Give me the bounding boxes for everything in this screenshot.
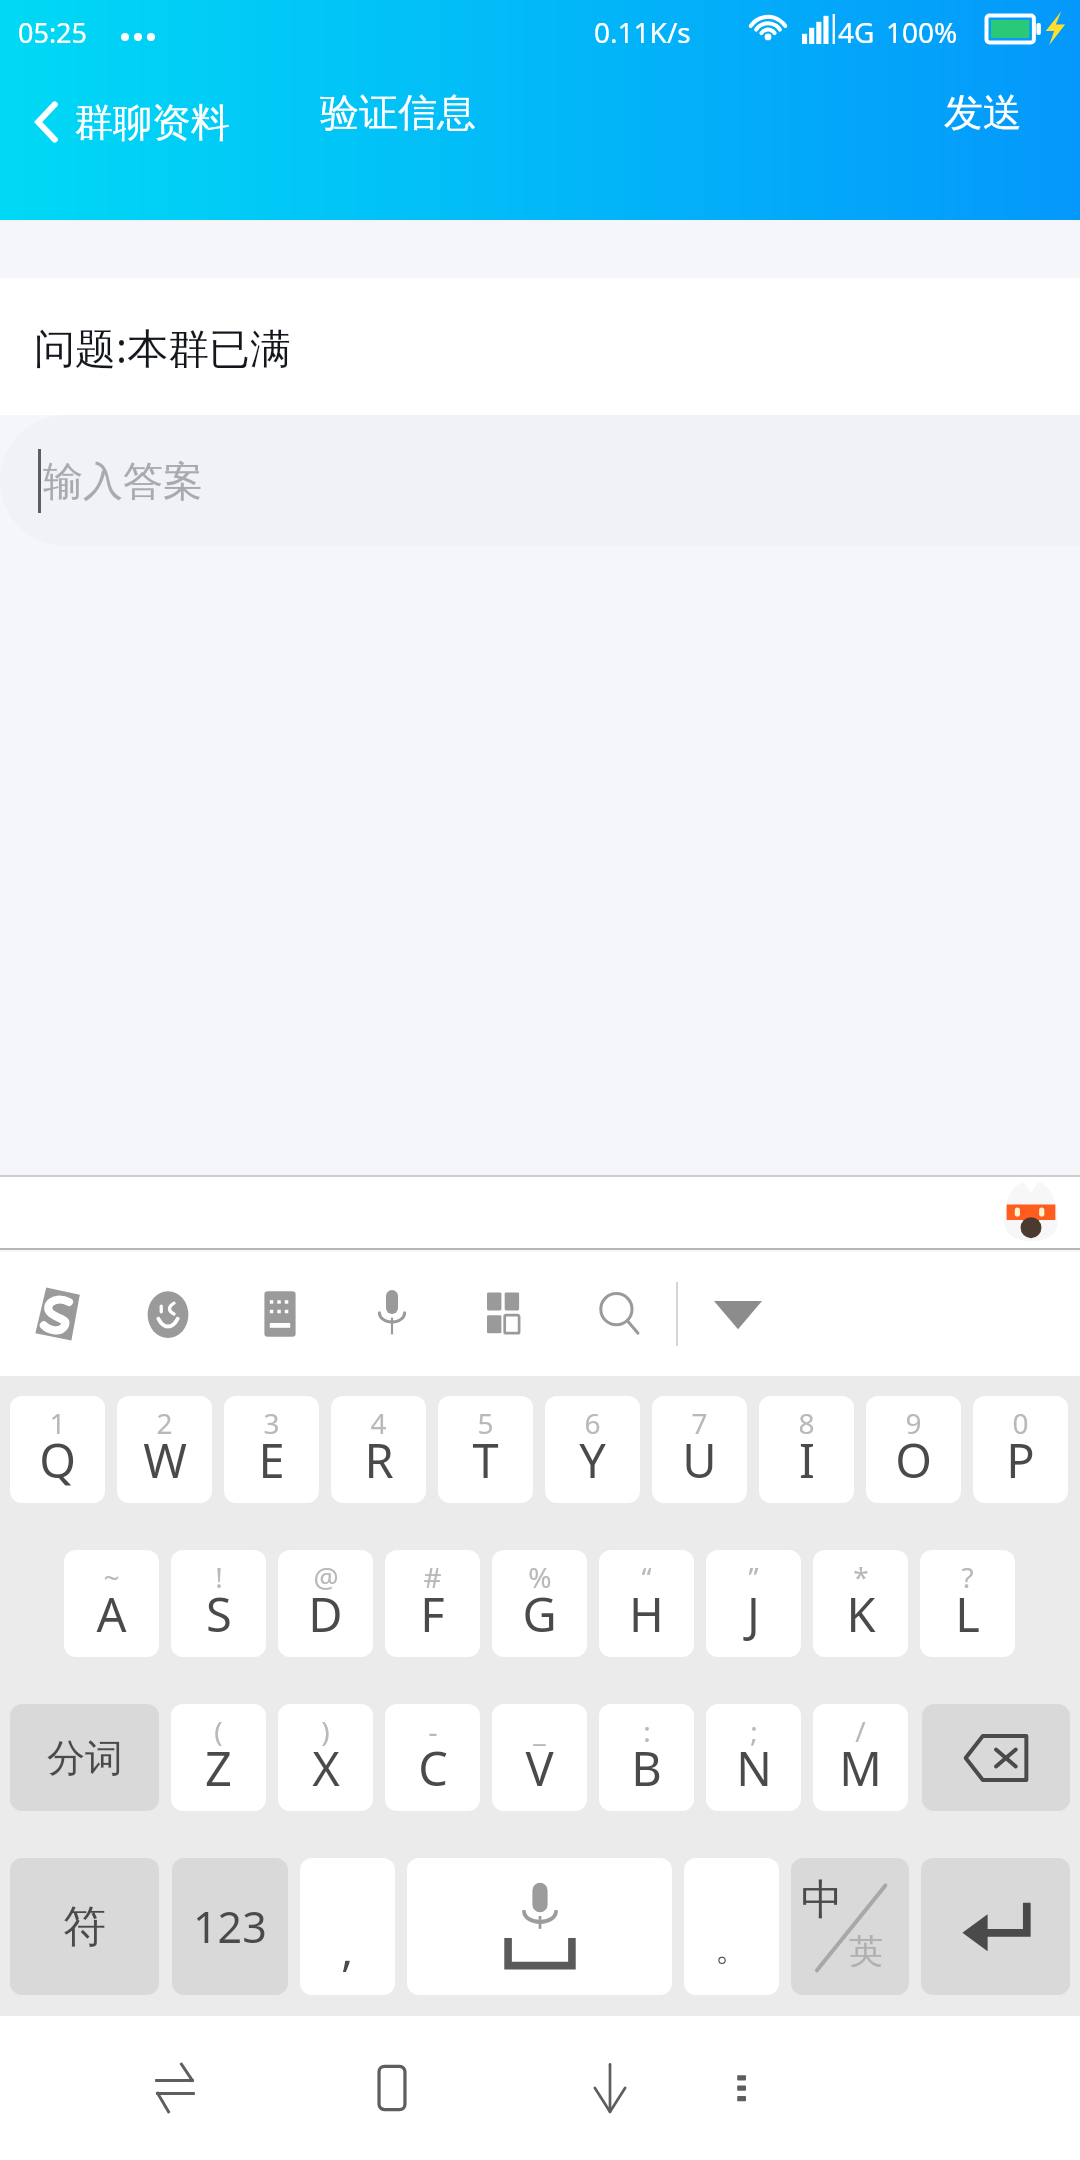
button[interactable]: Backspace <box>922 1704 1070 1811</box>
button[interactable]: Hide keyboard <box>688 1252 788 1376</box>
staticText: # <box>423 1558 442 1596</box>
staticText: C <box>418 1736 448 1800</box>
button[interactable]: 123 <box>172 1858 288 1995</box>
staticText: 分词 <box>47 1734 123 1782</box>
staticText: - <box>428 1712 438 1750</box>
button[interactable]: Keyboard <box>232 1252 328 1376</box>
staticText: 05:25 <box>18 14 88 51</box>
staticText: ; <box>750 1712 758 1750</box>
button[interactable]: Search <box>572 1252 668 1376</box>
staticText: ! <box>215 1558 223 1596</box>
button[interactable]: Emoji <box>120 1252 216 1376</box>
staticText: ~ <box>103 1558 120 1596</box>
button[interactable]: @ <box>278 1550 373 1657</box>
button[interactable]: 3 <box>224 1396 319 1503</box>
button[interactable]: Panels <box>457 1252 553 1376</box>
button[interactable]: Sogou <box>9 1252 105 1376</box>
button[interactable]: 2 <box>117 1396 212 1503</box>
button[interactable]: ) <box>278 1704 373 1811</box>
staticText: N <box>736 1736 772 1800</box>
staticText: A <box>96 1582 127 1646</box>
staticText: Y <box>579 1428 606 1492</box>
button[interactable]: Sogou assistant <box>1002 1178 1060 1248</box>
button[interactable]: Back <box>550 2016 670 2160</box>
staticText: / <box>855 1712 866 1750</box>
button[interactable]: 9 <box>866 1396 961 1503</box>
staticText: P <box>1006 1428 1035 1492</box>
staticText: 输入答案 <box>43 456 203 506</box>
staticText: I <box>799 1428 815 1492</box>
staticText: T <box>472 1428 499 1492</box>
staticText: G <box>522 1582 557 1646</box>
button[interactable]: 发送 <box>940 88 1026 137</box>
button[interactable]: Space <box>407 1858 672 1995</box>
button[interactable]: ” <box>706 1550 801 1657</box>
button[interactable]: ! <box>171 1550 266 1657</box>
button[interactable]: 1 <box>10 1396 105 1503</box>
staticText: V <box>525 1736 554 1800</box>
button[interactable]: / <box>813 1704 908 1811</box>
button[interactable]: - <box>385 1704 480 1811</box>
button[interactable]: 4 <box>331 1396 426 1503</box>
staticText: 0.11K/s <box>594 13 691 51</box>
button[interactable]: ; <box>706 1704 801 1811</box>
staticText: 。 <box>715 1927 749 1970</box>
button[interactable]: Recents <box>115 2016 235 2160</box>
button[interactable]: 6 <box>545 1396 640 1503</box>
button[interactable]: “ <box>599 1550 694 1657</box>
button[interactable]: Enter <box>921 1858 1070 1995</box>
staticText: H <box>629 1582 664 1646</box>
button[interactable]: 验证信息 <box>320 88 476 137</box>
button[interactable]: 7 <box>652 1396 747 1503</box>
button[interactable]: 群聊资料 <box>22 72 242 172</box>
staticText: 9 <box>905 1404 922 1442</box>
staticText: 6 <box>584 1404 601 1442</box>
staticText: * <box>853 1558 869 1596</box>
button[interactable]: 0 <box>973 1396 1068 1503</box>
staticText: F <box>420 1582 445 1646</box>
staticText: Z <box>205 1736 232 1800</box>
staticText: _ <box>533 1712 546 1750</box>
staticText: % <box>528 1558 552 1596</box>
staticText: 群聊资料 <box>74 98 230 147</box>
button[interactable]: 输入答案 <box>0 415 1080 546</box>
staticText: U <box>682 1428 717 1492</box>
staticText: R <box>364 1428 394 1492</box>
staticText: 100% <box>886 13 958 51</box>
staticText: @ <box>313 1558 339 1596</box>
staticText: O <box>895 1428 932 1492</box>
button[interactable]: 8 <box>759 1396 854 1503</box>
button[interactable]: * <box>813 1550 908 1657</box>
staticText: : <box>643 1712 651 1750</box>
button[interactable]: 5 <box>438 1396 533 1503</box>
staticText: B <box>631 1736 662 1800</box>
staticText: M <box>839 1736 882 1800</box>
staticText: 7 <box>691 1404 708 1442</box>
staticText: 英 <box>849 1930 883 1973</box>
button[interactable]: Home <box>332 2016 452 2160</box>
button[interactable]: 符 <box>10 1858 159 1995</box>
staticText: 1 <box>49 1404 66 1442</box>
staticText: ( <box>214 1712 223 1750</box>
button[interactable]: Voice input <box>344 1252 440 1376</box>
button[interactable]: ? <box>920 1550 1015 1657</box>
staticText: ) <box>321 1712 330 1750</box>
staticText: W <box>143 1428 187 1492</box>
button[interactable]: _ <box>492 1704 587 1811</box>
button[interactable]: # <box>385 1550 480 1657</box>
button[interactable]: % <box>492 1550 587 1657</box>
button[interactable]: ~ <box>64 1550 159 1657</box>
button[interactable]: : <box>599 1704 694 1811</box>
button[interactable]: 分词 <box>10 1704 159 1811</box>
staticText: 问题:本群已满 <box>34 319 291 375</box>
staticText: 8 <box>798 1404 815 1442</box>
staticText: , <box>341 1917 354 1980</box>
button[interactable]: , <box>300 1858 395 1995</box>
button[interactable]: Menu <box>682 2016 802 2160</box>
staticText: 3 <box>263 1404 280 1442</box>
button[interactable]: ( <box>171 1704 266 1811</box>
button[interactable]: 。 <box>684 1858 779 1995</box>
staticText: X <box>312 1736 340 1800</box>
staticText: J <box>747 1582 760 1646</box>
button[interactable]: Switch Chinese English <box>791 1858 909 1995</box>
